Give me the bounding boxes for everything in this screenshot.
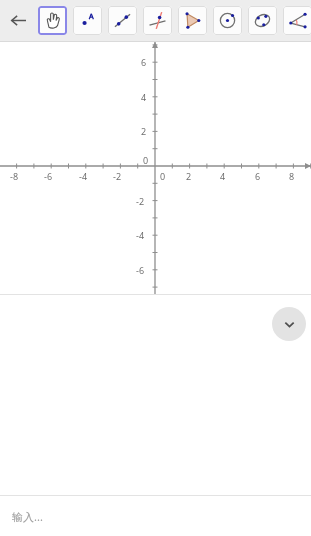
- button[interactable]: Line through two points: [108, 6, 137, 35]
- staticText: 2: [186, 170, 192, 182]
- staticText: 6: [141, 56, 147, 68]
- staticText: -4: [136, 229, 145, 241]
- staticText: -6: [44, 170, 53, 182]
- staticText: 0: [143, 154, 149, 166]
- staticText: 4: [141, 91, 147, 103]
- button[interactable]: Circle with centre: [213, 6, 242, 35]
- staticText: -8: [10, 170, 19, 182]
- staticText: -4: [79, 170, 88, 182]
- staticText: 输入...: [12, 509, 43, 524]
- staticText: 6: [255, 170, 261, 182]
- button[interactable]: Back: [3, 5, 34, 36]
- staticText: -2: [113, 170, 122, 182]
- staticText: -6: [136, 264, 145, 276]
- staticText: 0: [160, 170, 166, 182]
- button[interactable]: 输入...: [0, 496, 311, 536]
- button[interactable]: Move tool: [38, 6, 67, 35]
- button[interactable]: Conic through points: [248, 6, 277, 35]
- staticText: -2: [136, 195, 145, 207]
- staticText: 8: [289, 170, 295, 182]
- button[interactable]: Polygon: [178, 6, 207, 35]
- button[interactable]: Perpendicular line: [143, 6, 172, 35]
- button[interactable]: Point tool: [73, 6, 102, 35]
- button[interactable]: Collapse algebra view: [272, 307, 306, 341]
- button[interactable]: Graphics view: [0, 42, 311, 294]
- staticText: 4: [220, 170, 226, 182]
- button[interactable]: Angle: [283, 6, 311, 35]
- staticText: 2: [141, 125, 147, 137]
